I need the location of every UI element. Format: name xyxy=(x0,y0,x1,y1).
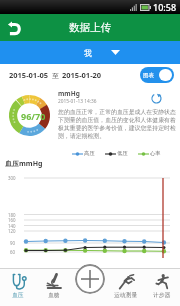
button[interactable]: 血压 xyxy=(0,268,36,306)
staticText: 2015-01-05 xyxy=(9,70,49,80)
staticText: 2015-01-13 14:36 xyxy=(58,98,97,105)
button[interactable]: 我 xyxy=(0,41,180,64)
staticText: 血压mmHg xyxy=(5,159,43,169)
staticText: 至 xyxy=(52,71,59,80)
staticText: 300 xyxy=(8,175,16,181)
staticText: 低压 xyxy=(117,150,128,157)
staticText: 高压 xyxy=(84,150,95,157)
button[interactable]: Refresh xyxy=(149,91,163,105)
staticText: 140 xyxy=(8,223,16,229)
staticText: 您的血压正常，正常的血压是成人在安静状态下测量的血压值，血压的变化和人体健康有着… xyxy=(58,108,176,140)
staticText: 10:58 xyxy=(153,1,177,13)
button[interactable]: 血糖 xyxy=(36,268,72,306)
staticText: 96/70 xyxy=(21,110,46,122)
staticText: mmHg xyxy=(58,89,80,98)
staticText: 160 xyxy=(8,217,16,223)
staticText: 60 xyxy=(10,249,16,255)
staticText: 90 xyxy=(10,240,16,246)
staticText: 血糖 xyxy=(48,291,60,298)
staticText: 180 xyxy=(8,212,16,218)
staticText: 数据上传 xyxy=(69,21,111,34)
staticText: 图表 xyxy=(143,72,154,79)
staticText: 运动测量 xyxy=(114,291,138,298)
button[interactable]: Add xyxy=(75,264,105,294)
staticText: 120 xyxy=(8,228,16,234)
button[interactable]: 计步器 xyxy=(144,268,180,306)
staticText: 心率 xyxy=(150,150,161,157)
button[interactable]: Back xyxy=(0,15,26,41)
staticText: 计步器 xyxy=(153,291,171,298)
staticText: 我 xyxy=(84,48,92,58)
staticText: 2015-01-20 xyxy=(62,70,102,80)
staticText: 血压 xyxy=(12,291,24,298)
button[interactable]: 运动测量 xyxy=(108,268,144,306)
button[interactable]: 图表 xyxy=(140,67,174,83)
